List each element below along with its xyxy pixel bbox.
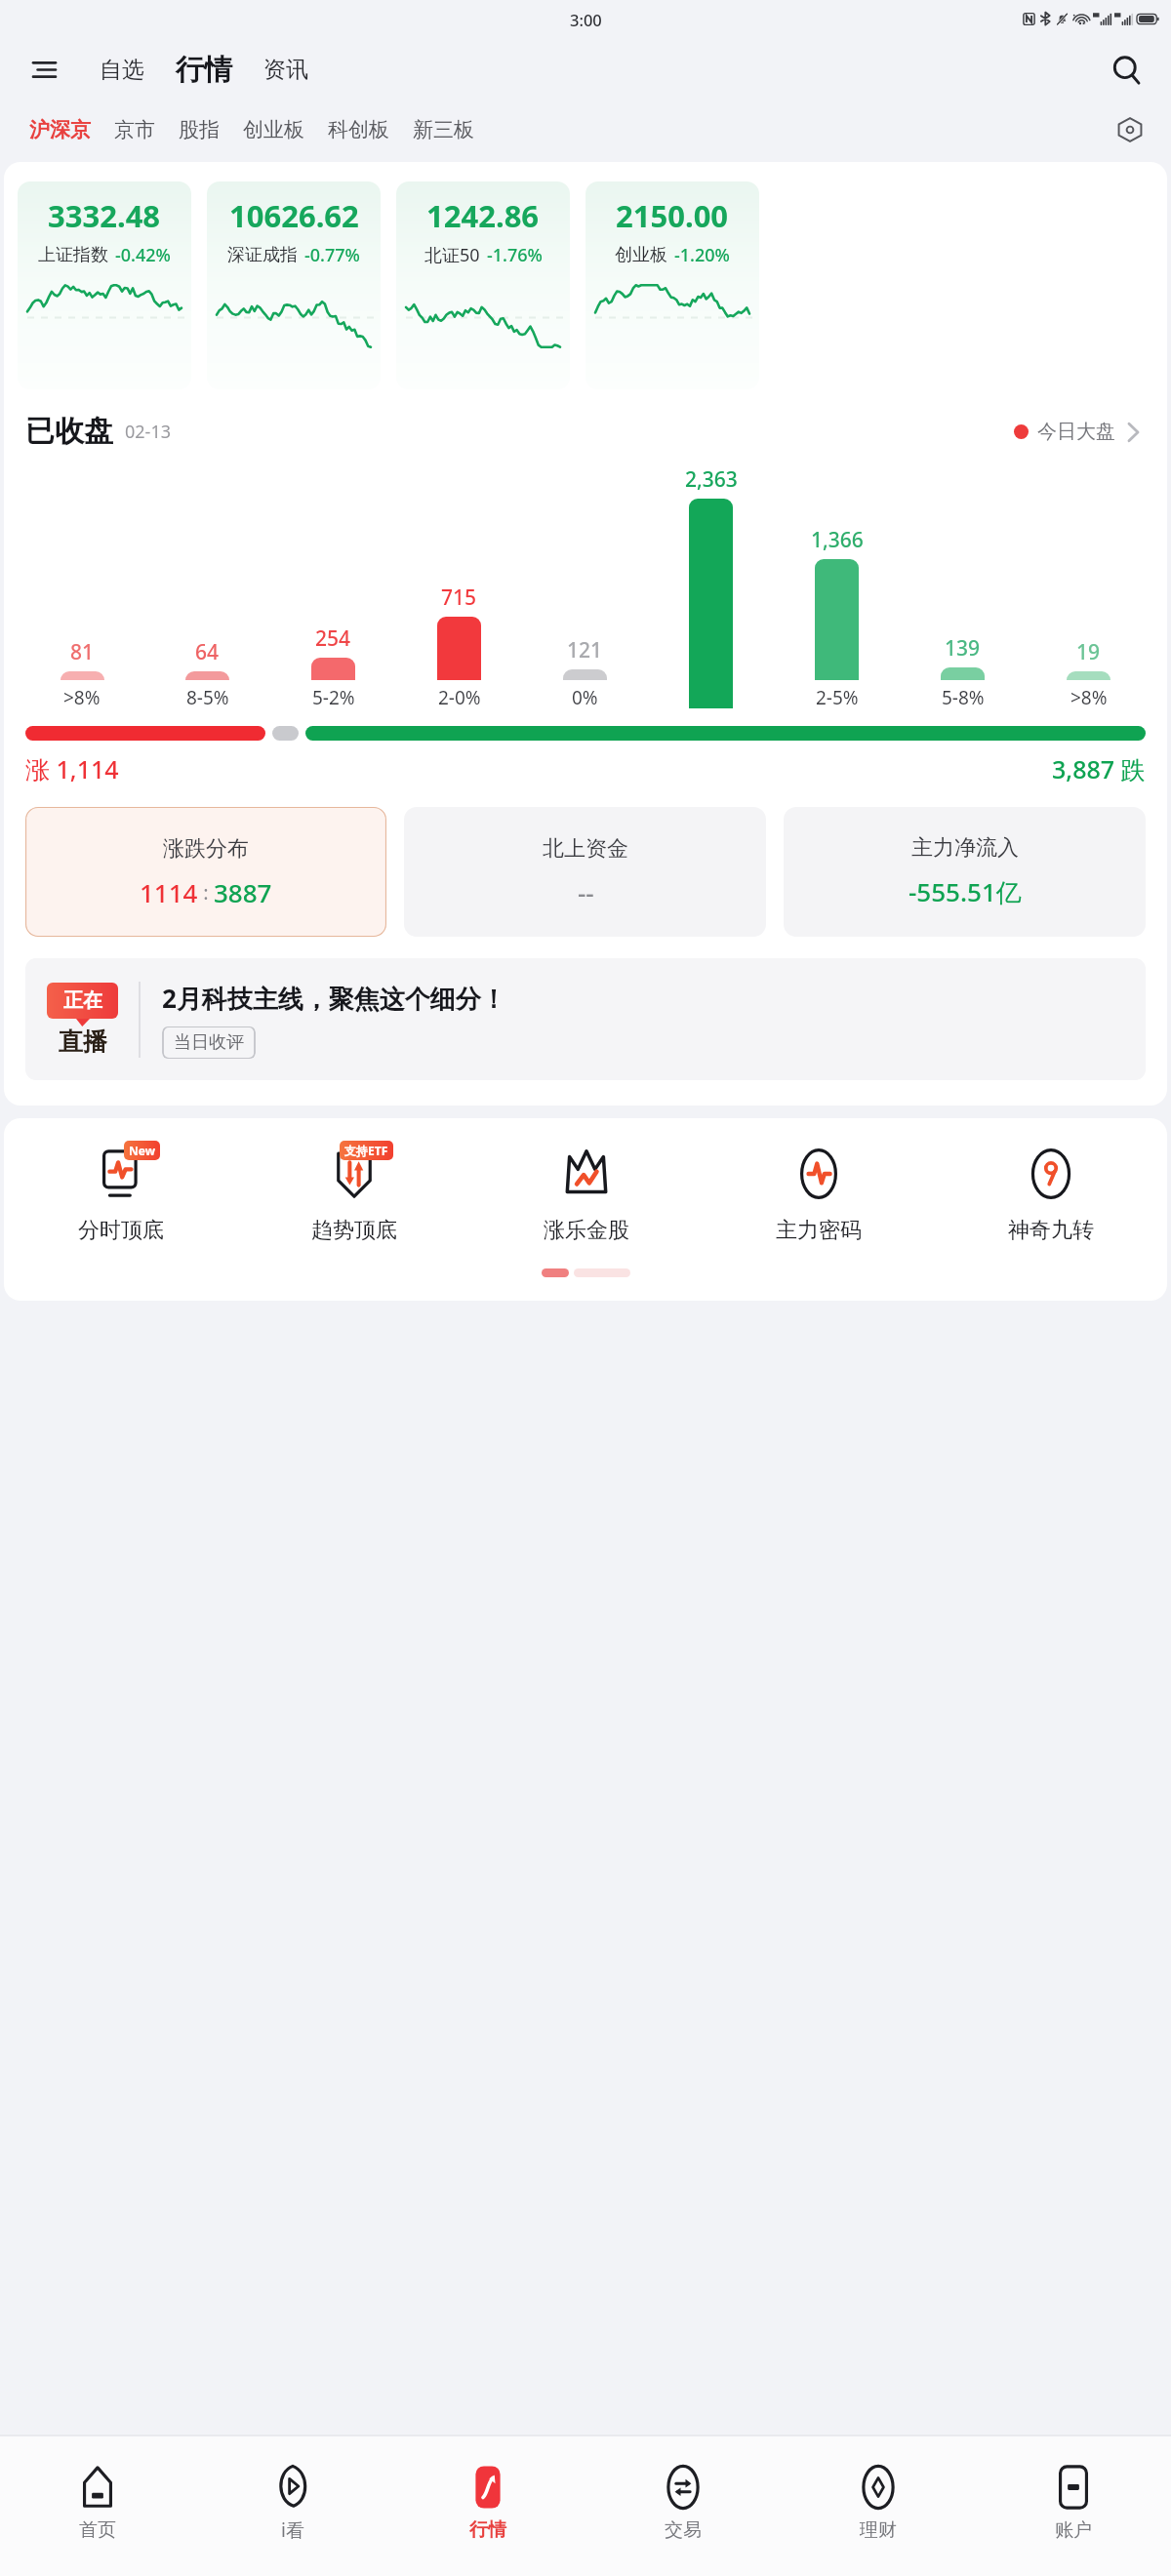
button[interactable]: 2,363 — [648, 465, 774, 710]
button[interactable]: i看 — [195, 2436, 390, 2568]
staticText: 1,366 — [811, 526, 864, 554]
staticText: 3887 — [214, 875, 272, 909]
staticText: 涨 1,114 — [25, 752, 119, 785]
staticText: 8-5% — [186, 685, 229, 710]
button[interactable]: 主力密码 — [703, 1144, 935, 1244]
staticText: 涨乐金股 — [544, 1217, 629, 1244]
button[interactable]: 81 — [20, 638, 144, 710]
button[interactable]: 科创板 — [316, 109, 401, 150]
staticText: 81 — [70, 638, 95, 666]
staticText: 已收盘 — [25, 413, 113, 450]
staticText: 创业板 — [243, 117, 304, 142]
button[interactable]: 自选 — [90, 50, 154, 90]
staticText: 5-8% — [942, 685, 985, 710]
button[interactable]: 1242.86 — [396, 181, 570, 389]
button[interactable]: 新三板 — [401, 109, 486, 150]
button[interactable]: 64 — [144, 638, 270, 710]
staticText: 账户 — [1055, 2518, 1092, 2542]
button[interactable]: 北上资金 — [404, 807, 766, 937]
staticText: 自选 — [100, 56, 144, 84]
button[interactable]: 京市 — [102, 109, 167, 150]
button[interactable]: 主力净流入 — [784, 807, 1146, 937]
button[interactable]: 今日大盘 — [1008, 414, 1146, 450]
staticText: 北证50 — [424, 243, 480, 267]
button[interactable]: 2150.00 — [585, 181, 759, 389]
button[interactable]: 121 — [522, 636, 648, 710]
button[interactable]: 股指 — [167, 109, 231, 150]
staticText: -0.42% — [115, 243, 171, 267]
staticText: 2月科技主线，聚焦这个细分！ — [162, 981, 506, 1016]
button[interactable]: 3332.48 — [18, 181, 191, 389]
button[interactable]: 支持ETF — [237, 1144, 470, 1244]
button[interactable]: 139 — [900, 634, 1026, 710]
staticText: -- — [578, 875, 594, 909]
button[interactable]: 行情 — [390, 2436, 585, 2568]
staticText: 分时顶底 — [78, 1217, 164, 1244]
button[interactable]: 1,366 — [774, 526, 900, 710]
staticText: -0.77% — [304, 243, 360, 267]
staticText: 3,887 跌 — [1052, 752, 1146, 785]
staticText: 趋势顶底 — [311, 1217, 397, 1244]
staticText: 正在 — [63, 988, 102, 1013]
button[interactable]: 理财 — [781, 2436, 976, 2568]
button[interactable]: 资讯 — [254, 50, 318, 90]
staticText: 121 — [567, 636, 603, 664]
button[interactable]: 沪深京 — [18, 109, 102, 150]
staticText: 02-13 — [125, 420, 171, 444]
button[interactable]: New — [4, 1144, 237, 1244]
button[interactable]: 涨跌分布 — [25, 807, 386, 937]
staticText: 行情 — [469, 2518, 506, 2542]
button[interactable]: 账户 — [976, 2436, 1171, 2568]
staticText: 2150.00 — [616, 195, 729, 236]
staticText: New — [129, 1143, 155, 1158]
staticText: 北上资金 — [543, 835, 628, 863]
staticText: 2-0% — [438, 685, 481, 710]
staticText: 715 — [441, 584, 477, 612]
staticText: 0% — [572, 685, 598, 710]
staticText: 支持ETF — [344, 1143, 388, 1158]
staticText: 3:00 — [570, 9, 602, 30]
button[interactable]: 涨乐金股 — [470, 1144, 703, 1244]
button[interactable]: 19 — [1026, 638, 1151, 710]
staticText: -555.51亿 — [909, 874, 1022, 909]
button[interactable]: 715 — [396, 584, 522, 710]
staticText: 创业板 — [615, 244, 667, 266]
staticText: 主力净流入 — [911, 834, 1019, 862]
staticText: 2,363 — [685, 465, 738, 494]
button[interactable]: Menu — [21, 47, 66, 92]
staticText: 139 — [945, 634, 981, 663]
button[interactable]: 创业板 — [231, 109, 316, 150]
staticText: 当日收评 — [174, 1031, 244, 1054]
button[interactable]: 交易 — [585, 2436, 781, 2568]
staticText: 1114 — [140, 875, 198, 909]
staticText: 资讯 — [263, 56, 308, 84]
staticText: 64 — [195, 638, 220, 666]
staticText: 19 — [1076, 638, 1101, 666]
staticText: 行情 — [176, 52, 232, 88]
button[interactable]: 正在 — [25, 958, 1146, 1080]
button[interactable]: Search — [1103, 46, 1150, 93]
button[interactable]: 神奇九转 — [935, 1144, 1167, 1244]
staticText: 5-2% — [312, 685, 355, 710]
staticText: 股指 — [179, 117, 220, 142]
staticText: : — [198, 879, 214, 906]
staticText: 上证指数 — [38, 244, 108, 266]
staticText: 254 — [315, 624, 351, 653]
staticText: 主力密码 — [776, 1217, 862, 1244]
button[interactable]: 行情 — [168, 48, 240, 92]
button[interactable]: 首页 — [0, 2436, 195, 2568]
staticText: 深证成指 — [227, 244, 298, 266]
staticText: 理财 — [860, 2518, 897, 2542]
staticText: 3332.48 — [48, 195, 161, 236]
staticText: 科创板 — [328, 117, 389, 142]
button[interactable]: 10626.62 — [207, 181, 381, 389]
staticText: 直播 — [59, 1026, 107, 1057]
staticText: 首页 — [79, 2518, 116, 2542]
staticText: i看 — [281, 2517, 304, 2543]
button[interactable]: More markets — [1109, 108, 1151, 151]
staticText: -1.20% — [674, 243, 730, 267]
staticText: 今日大盘 — [1037, 420, 1115, 444]
staticText: 沪深京 — [29, 117, 91, 142]
staticText: 京市 — [114, 117, 155, 142]
button[interactable]: 254 — [270, 624, 396, 710]
